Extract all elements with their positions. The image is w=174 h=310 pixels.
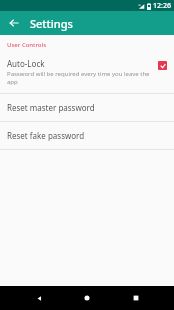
- staticText: Auto-Lock: [7, 58, 45, 69]
- button[interactable]: Home: [77, 288, 97, 308]
- button[interactable]: Reset master password: [0, 94, 174, 121]
- staticText: Reset master password: [7, 102, 95, 113]
- button[interactable]: Auto-Lock enabled: [158, 61, 167, 70]
- button[interactable]: Back: [5, 14, 23, 32]
- button[interactable]: Auto-Lock: [0, 51, 174, 93]
- staticText: Settings: [30, 16, 73, 31]
- staticText: User Controls: [7, 41, 47, 49]
- button[interactable]: Recent apps: [126, 288, 146, 308]
- button[interactable]: Back: [29, 288, 49, 308]
- staticText: 12:26: [153, 1, 171, 11]
- staticText: Reset fake password: [7, 130, 85, 141]
- button[interactable]: Reset fake password: [0, 122, 174, 149]
- staticText: Password will be required every time you…: [7, 70, 154, 86]
